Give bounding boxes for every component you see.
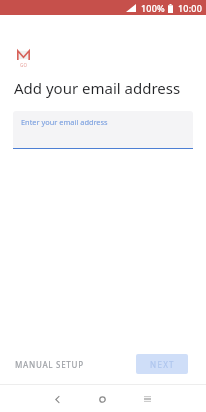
button[interactable]: NEXT (136, 354, 188, 374)
staticText: 10:00 (178, 2, 203, 14)
button[interactable]: Back (45, 387, 69, 411)
button[interactable]: MANUAL SETUP (9, 354, 90, 375)
staticText: GO (20, 62, 28, 68)
button[interactable]: Home (90, 387, 114, 411)
staticText: Add your email address (14, 78, 181, 98)
staticText: Enter your email address (21, 117, 108, 127)
button[interactable]: Recent apps (135, 387, 159, 411)
staticText: 100% (141, 2, 165, 14)
staticText: NEXT (150, 359, 175, 370)
staticText: MANUAL SETUP (15, 359, 84, 370)
button[interactable]: Enter your email address (13, 111, 193, 148)
